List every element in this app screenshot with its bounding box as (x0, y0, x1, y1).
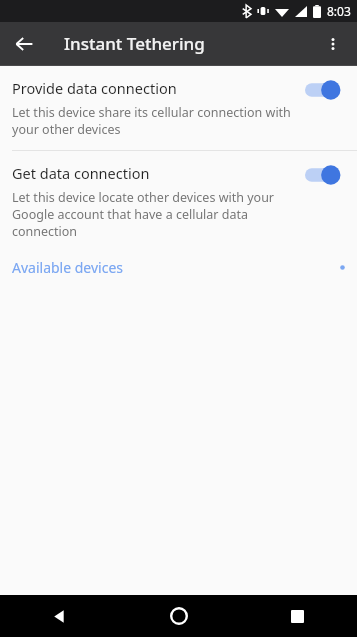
staticText: Let this device share its cellular conne… (12, 104, 295, 138)
staticText: Let this device locate other devices wit… (12, 189, 295, 240)
button[interactable]: Provide data connection (0, 66, 357, 150)
staticText: Get data connection (12, 163, 150, 183)
staticText: 8:03 (327, 3, 351, 19)
button[interactable]: Home (119, 595, 238, 637)
button[interactable]: Toggle (305, 164, 347, 186)
button[interactable]: Available devices (0, 252, 357, 291)
button[interactable]: More options (315, 26, 351, 62)
button[interactable]: Back (0, 595, 119, 637)
button[interactable]: Recent apps (238, 595, 357, 637)
button[interactable]: Toggle (305, 79, 347, 101)
button[interactable]: Get data connection (0, 151, 357, 252)
staticText: Available devices (12, 258, 124, 277)
button[interactable]: Navigate up (6, 26, 42, 62)
staticText: Provide data connection (12, 78, 177, 98)
staticText: Instant Tethering (64, 32, 205, 55)
